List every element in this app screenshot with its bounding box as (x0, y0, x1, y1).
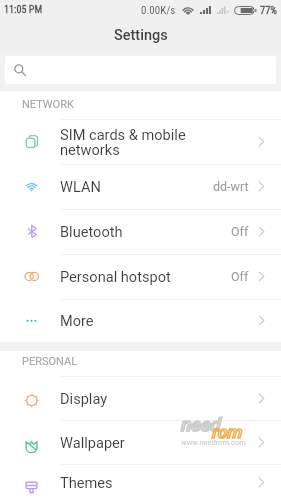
staticText: Themes (60, 474, 258, 491)
staticText: 11:05 PM (4, 4, 43, 16)
staticText: NETWORK (22, 98, 74, 111)
staticText: Display (60, 390, 258, 407)
button[interactable]: Display (0, 376, 281, 420)
staticText: Off (231, 224, 249, 239)
staticText: WLAN (60, 178, 213, 195)
staticText: Personal hotspot (60, 268, 231, 285)
staticText: SIM cards & mobile networks (60, 126, 258, 158)
staticText: 77% (260, 4, 278, 16)
button[interactable]: SIM cards & mobile networks (0, 119, 281, 164)
button[interactable]: Search settings (5, 56, 276, 84)
staticText: More (60, 312, 258, 329)
staticText: 0.00K/s (141, 4, 176, 17)
staticText: Settings (114, 27, 168, 44)
staticText: rom (211, 422, 242, 442)
button[interactable]: Wallpaper (0, 420, 281, 464)
staticText: dd-wrt (213, 179, 249, 194)
staticText: Bluetooth (60, 223, 231, 240)
button[interactable]: Themes (0, 464, 281, 500)
staticText: need (180, 414, 220, 435)
staticText: Off (231, 269, 249, 284)
button[interactable]: Bluetooth (0, 209, 281, 254)
button[interactable]: WLAN (0, 164, 281, 209)
button[interactable]: More (0, 299, 281, 342)
staticText: PERSONAL (22, 355, 78, 368)
button[interactable]: Personal hotspot (0, 254, 281, 299)
staticText: Wallpaper (60, 434, 258, 451)
staticText: www.needrom.com (181, 438, 246, 447)
